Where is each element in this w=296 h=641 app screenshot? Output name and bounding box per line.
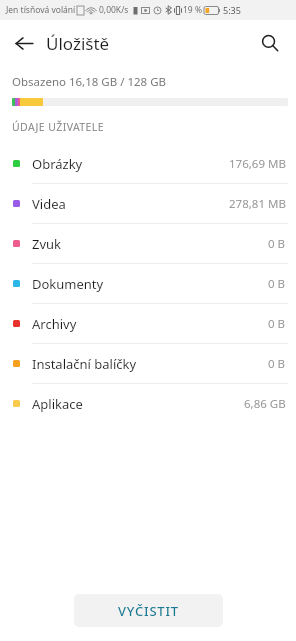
staticText: 6,86 GB xyxy=(244,396,286,412)
staticText: 5:35 xyxy=(223,4,241,16)
button[interactable]: Instalační balíčky xyxy=(0,344,296,383)
button[interactable]: VYČISTIT xyxy=(74,594,223,627)
staticText: Obrázky xyxy=(32,155,83,173)
staticText: 0,00K/s xyxy=(99,4,129,16)
staticText: 0 B xyxy=(268,236,286,252)
button[interactable]: Obrázky xyxy=(0,144,296,183)
button[interactable]: Aplikace xyxy=(0,384,296,423)
button[interactable]: Zvuk xyxy=(0,224,296,263)
staticText: 0 B xyxy=(268,276,286,292)
staticText: 278,81 MB xyxy=(229,196,286,212)
button[interactable]: Dokumenty xyxy=(0,264,296,303)
staticText: 176,69 MB xyxy=(229,156,286,172)
staticText: Zvuk xyxy=(32,235,62,253)
button[interactable]: Videa xyxy=(0,184,296,223)
button[interactable]: Archivy xyxy=(0,304,296,343)
staticText: 0 B xyxy=(268,316,286,332)
staticText: Dokumenty xyxy=(32,275,104,293)
button[interactable]: Back xyxy=(4,23,44,63)
staticText: Archivy xyxy=(32,315,77,333)
staticText: Obsazeno 16,18 GB / 128 GB xyxy=(12,74,167,90)
staticText: VYČISTIT xyxy=(118,602,179,620)
staticText: Videa xyxy=(32,195,66,213)
staticText: Aplikace xyxy=(32,395,83,413)
staticText: ÚDAJE UŽIVATELE xyxy=(12,120,104,134)
staticText: Úložiště xyxy=(46,32,110,55)
staticText: 0 B xyxy=(268,356,286,372)
staticText: 19 % xyxy=(183,4,202,16)
staticText: Instalační balíčky xyxy=(32,355,137,373)
staticText: Jen tísňová volání xyxy=(6,4,76,16)
button[interactable]: Search xyxy=(250,23,290,63)
